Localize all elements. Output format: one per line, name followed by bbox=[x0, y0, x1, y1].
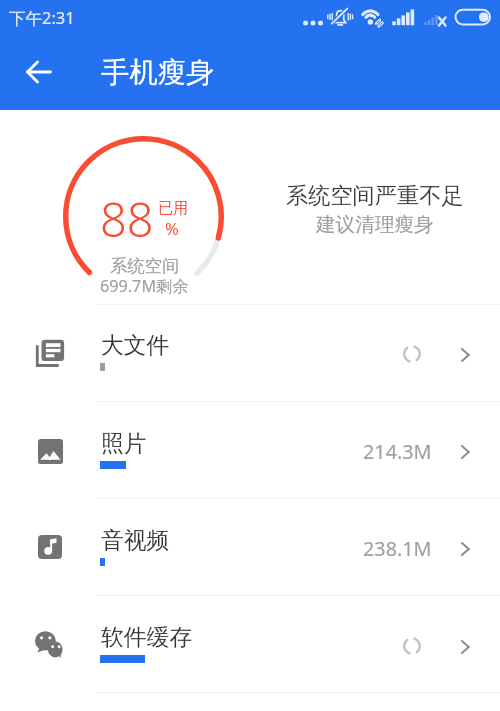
staticText: 88 bbox=[100, 187, 154, 251]
staticText: 软件缓存 bbox=[101, 623, 193, 652]
staticText: 238.1M bbox=[363, 535, 432, 562]
button[interactable]: 软件缓存 bbox=[0, 596, 500, 693]
staticText: % bbox=[165, 217, 179, 240]
button[interactable]: Back bbox=[11, 44, 67, 100]
staticText: 照片 bbox=[101, 429, 147, 458]
staticText: 已用 bbox=[158, 198, 189, 217]
staticText: 音视频 bbox=[101, 526, 170, 555]
staticText: 建议清理瘦身 bbox=[316, 212, 434, 237]
staticText: 系统空间严重不足 bbox=[286, 182, 464, 210]
button[interactable]: 大文件 bbox=[0, 304, 500, 402]
staticText: 手机瘦身 bbox=[101, 55, 215, 91]
button[interactable]: 音视频 bbox=[0, 498, 500, 596]
staticText: 214.3M bbox=[363, 438, 432, 465]
staticText: 大文件 bbox=[101, 331, 170, 360]
staticText: 系统空间 bbox=[110, 255, 180, 277]
staticText: 下午2:31 bbox=[9, 6, 75, 29]
staticText: 699.7M剩余 bbox=[100, 275, 189, 297]
button[interactable]: 照片 bbox=[0, 402, 500, 499]
